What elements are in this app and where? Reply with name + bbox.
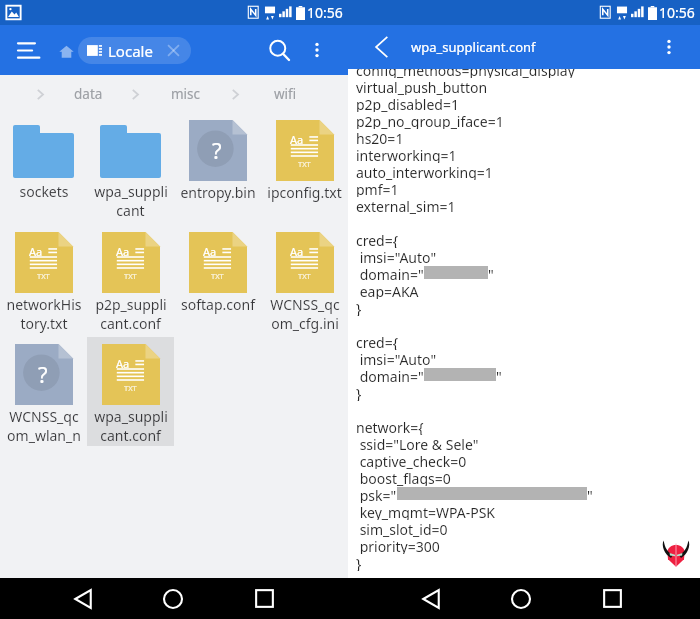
staticText: misc [171,85,201,103]
staticText: ipconfig.txt [267,183,342,202]
staticText: cred={ [356,231,399,248]
button[interactable]: Back [366,32,396,62]
staticText: softap.conf [181,295,255,314]
staticText: 10:56 [659,3,695,22]
staticText: TXT [124,383,137,393]
staticText: p2p_no_group_iface=1 [356,112,504,129]
button[interactable]: data [74,85,103,103]
staticText: Aa [290,132,304,147]
staticText: key_mgmt=WPA-PSK [356,503,496,520]
staticText: external_sim=1 [356,197,456,214]
button[interactable]: Home [149,578,196,619]
staticText: Aa [116,356,130,371]
staticText: auto_interworking=1 [356,163,493,180]
staticText: interworking=1 [356,146,457,163]
staticText: om_wlan_n [7,426,81,445]
staticText: Aa [290,244,304,259]
staticText: TXT [37,271,50,281]
staticText: " [587,486,593,503]
button[interactable]: wifi [274,85,297,103]
staticText: Aa [116,244,130,259]
button[interactable]: Search [260,31,298,69]
staticText: TXT [298,159,311,169]
button[interactable]: Home [55,39,77,61]
button[interactable]: Aa [0,225,87,337]
button[interactable]: ? [0,337,87,449]
button[interactable]: More options [650,28,688,66]
staticText: cred={ [356,333,399,350]
button[interactable]: wpa_suppli [87,113,174,225]
staticText: ssid="Lore & Sele" [356,435,479,452]
staticText: Locale [108,41,153,61]
button[interactable]: Locale [78,37,191,64]
staticText: boost_flags=0 [356,469,451,486]
button[interactable]: Recents [241,578,288,619]
staticText: sim_slot_id=0 [356,520,448,537]
staticText: p2p_suppli [95,295,167,314]
staticText: priority=300 [356,537,440,554]
staticText: p2p_disabled=1 [356,95,459,112]
staticText: tory.txt [20,314,68,333]
button[interactable]: Aa [174,225,261,337]
staticText: eap=AKA [356,282,419,299]
button[interactable]: Back [59,578,106,619]
staticText: psk=" [356,486,397,503]
staticText: config_methods=physical_display [356,61,575,78]
staticText: WCNSS_qc [9,407,79,426]
staticText: TXT [298,271,311,281]
button[interactable]: Aa [87,337,174,449]
staticText: Aa [29,244,43,259]
button[interactable]: Back [407,578,454,619]
button[interactable]: Recents [589,578,636,619]
staticText: om_cfg.ini [271,314,339,333]
staticText: captive_check=0 [356,452,467,469]
staticText: " [488,265,494,282]
staticText: cant.conf [100,314,161,333]
staticText: " [496,367,502,384]
button[interactable]: sockets [0,113,87,225]
staticText: imsi="Auto" [356,350,437,367]
staticText: entropy.bin [180,183,256,202]
staticText: } [356,299,362,316]
staticText: wpa_suppli [94,407,168,426]
staticText: domain=" [356,265,424,282]
staticText: virtual_push_button [356,78,488,95]
staticText: 10:56 [307,3,343,22]
staticText: network={ [356,418,424,435]
button[interactable]: Aa [261,113,348,225]
staticText: } [356,554,362,571]
staticText: domain=" [356,367,424,384]
staticText: imsi="Auto" [356,248,437,265]
button[interactable]: Home [497,578,544,619]
staticText: sockets [19,182,69,201]
staticText: wpa_supplicant.conf [411,38,536,56]
staticText: networkHis [6,295,82,314]
staticText: hs20=1 [356,129,404,146]
button[interactable]: Aa [261,225,348,337]
staticText: cant.conf [100,426,161,445]
button[interactable]: misc [171,85,201,103]
staticText: data [74,85,103,103]
button[interactable]: ? [174,113,261,225]
staticText: cant [116,201,145,220]
staticText: TXT [124,271,137,281]
staticText: WCNSS_qc [270,295,340,314]
staticText: ? [212,135,222,165]
staticText: } [356,384,362,401]
staticText: wpa_suppli [94,182,168,201]
button[interactable]: Menu [13,34,45,66]
staticText: Aa [203,244,217,259]
staticText: pmf=1 [356,180,399,197]
staticText: ? [38,359,48,389]
button[interactable]: More options [298,31,336,69]
button[interactable]: Aa [87,225,174,337]
staticText: wifi [274,85,297,103]
staticText: TXT [211,271,224,281]
